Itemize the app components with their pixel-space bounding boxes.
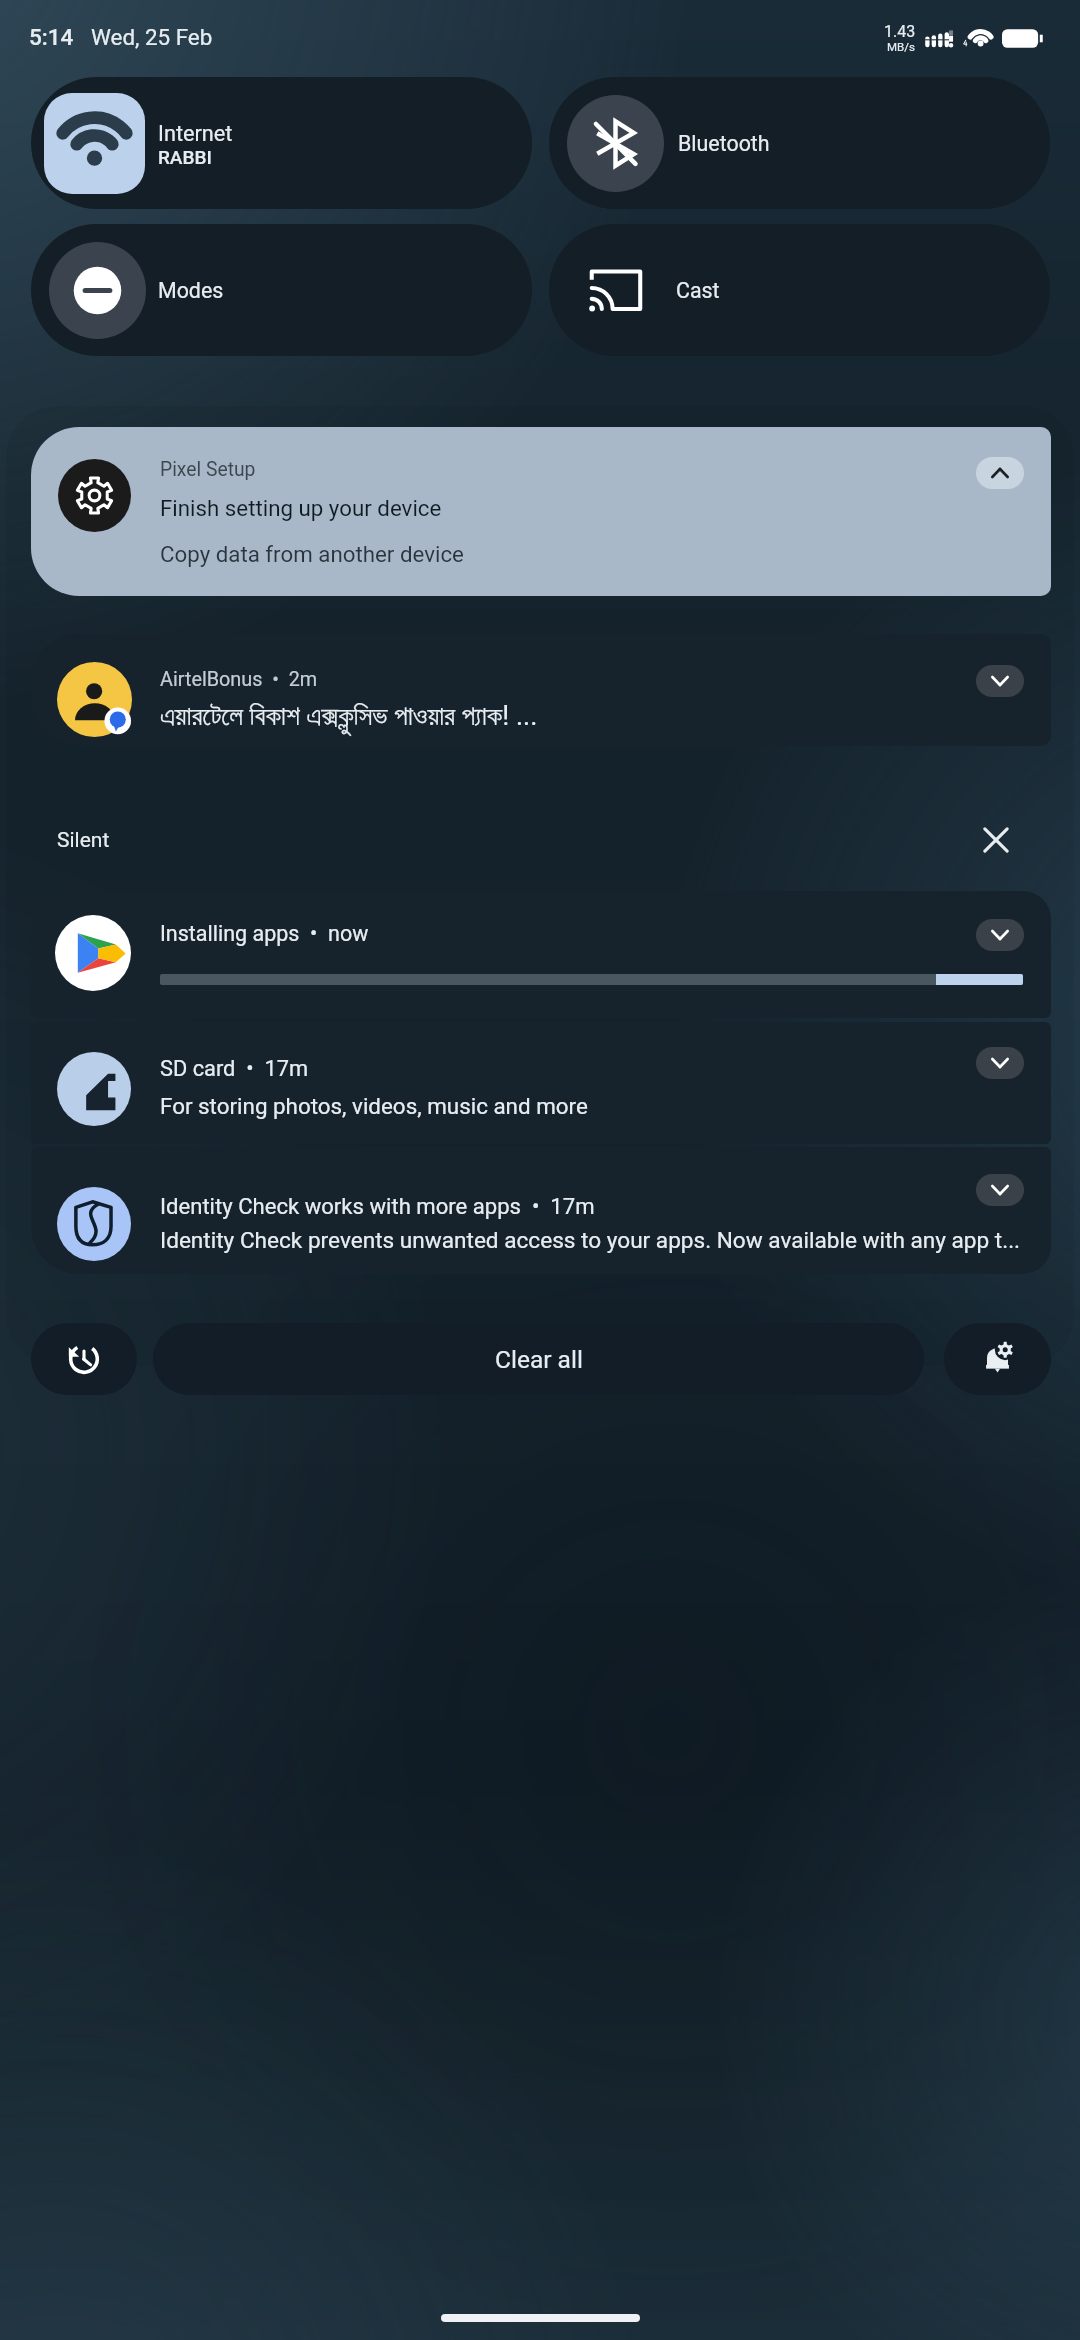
staticText: 5:14 [29, 24, 74, 50]
staticText: For storing photos, videos, music and mo… [160, 1093, 588, 1119]
button[interactable]: Cast [549, 224, 1050, 356]
staticText: Modes [158, 278, 224, 303]
staticText: Bluetooth [678, 131, 770, 156]
button[interactable]: Installing apps • now [31, 891, 1051, 1018]
button[interactable]: Identity Check works with more apps • 17… [31, 1147, 1051, 1274]
staticText: 1.43 [884, 22, 916, 41]
staticText: Pixel Setup [160, 458, 256, 481]
staticText: Cast [676, 278, 720, 303]
button[interactable]: Clear all [153, 1323, 924, 1395]
button[interactable]: SD card • 17m [31, 1022, 1051, 1144]
button[interactable]: AirtelBonus • 2m [31, 634, 1051, 746]
button[interactable]: Expand notification [976, 919, 1024, 951]
staticText: Finish setting up your device [160, 495, 442, 521]
button[interactable]: Bluetooth [549, 77, 1050, 209]
staticText: Installing apps • now [160, 921, 369, 946]
button[interactable]: Collapse notification [976, 457, 1024, 489]
button[interactable]: Notification settings [944, 1323, 1051, 1395]
staticText: Silent [57, 828, 110, 853]
staticText: Clear all [495, 1345, 583, 1374]
button[interactable]: Clear silent notifications [970, 814, 1022, 866]
staticText: Wed, 25 Feb [91, 24, 213, 50]
button[interactable]: Modes [31, 224, 532, 356]
staticText: MB/s [887, 40, 915, 53]
button[interactable]: Notification history [31, 1323, 137, 1395]
button[interactable]: Expand notification [976, 1174, 1024, 1206]
staticText: Internet [158, 121, 233, 146]
button[interactable]: Expand notification [976, 1047, 1024, 1079]
staticText: SD card • 17m [160, 1056, 308, 1082]
button[interactable]: Internet [31, 77, 532, 209]
button[interactable]: Expand notification [976, 665, 1024, 697]
staticText: Identity Check prevents unwanted access … [160, 1227, 1051, 1253]
staticText: AirtelBonus • 2m [160, 668, 318, 691]
staticText: Identity Check works with more apps • 17… [160, 1193, 595, 1219]
staticText: এয়ারটেলে বিকাশ এক্সক্লুসিভ পাওয়ার প্যা… [160, 700, 538, 732]
staticText: RABBI [158, 146, 212, 168]
staticText: Copy data from another device [160, 541, 464, 567]
button[interactable]: Pixel Setup [31, 427, 1051, 596]
